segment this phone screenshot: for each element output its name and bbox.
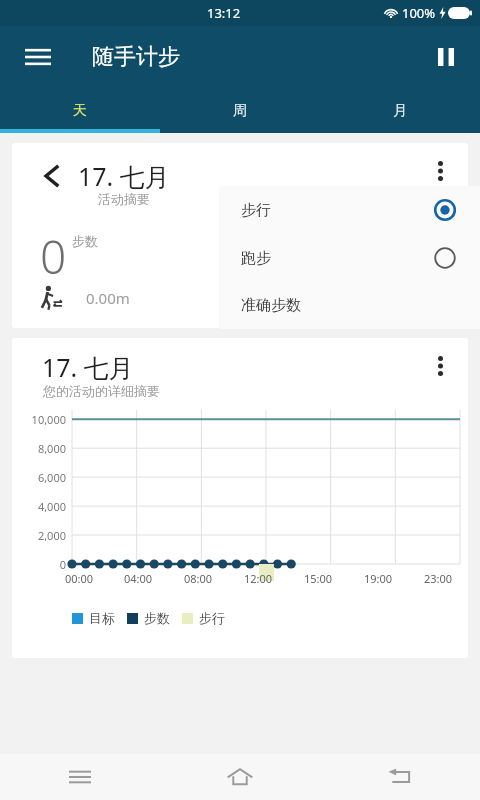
staticText: 13:12: [207, 4, 241, 22]
staticText: 00:00: [65, 571, 94, 586]
staticText: 100%: [402, 4, 436, 22]
staticText: 步数: [72, 233, 98, 249]
staticText: 2,000: [12, 528, 66, 543]
staticText: 10,000: [12, 412, 66, 427]
staticText: 随手计步: [92, 43, 180, 71]
staticText: 6,000: [12, 470, 66, 485]
button[interactable]: Previous day: [38, 163, 64, 189]
staticText: 23:00: [424, 571, 453, 586]
button[interactable]: More options: [420, 346, 460, 386]
staticText: 活动摘要: [98, 191, 150, 207]
button[interactable]: 天: [0, 88, 160, 133]
staticText: 步数: [144, 610, 170, 626]
staticText: 12:00: [244, 571, 273, 586]
staticText: 0: [40, 225, 67, 288]
button[interactable]: 17. 七月: [12, 338, 468, 658]
staticText: 目标: [89, 610, 115, 626]
staticText: 您的活动的详细摘要: [43, 383, 160, 399]
button[interactable]: Menu: [14, 33, 62, 81]
staticText: 准确步数: [241, 296, 301, 315]
button[interactable]: Previous day: [12, 143, 468, 328]
button[interactable]: 周: [160, 88, 320, 133]
staticText: 周: [233, 102, 247, 120]
button[interactable]: 准确步数: [219, 282, 480, 329]
staticText: 17. 七月: [78, 159, 170, 193]
button[interactable]: 步行: [219, 186, 480, 234]
button[interactable]: 跑步: [219, 234, 480, 282]
staticText: 步行: [241, 201, 271, 220]
button[interactable]: Recents: [0, 754, 160, 800]
staticText: 17. 七月: [42, 350, 134, 384]
button[interactable]: Back: [320, 754, 480, 800]
staticText: 跑步: [241, 249, 271, 268]
button[interactable]: Pause: [424, 35, 468, 79]
staticText: 月: [393, 102, 407, 120]
staticText: 19:00: [364, 571, 393, 586]
staticText: 04:00: [124, 571, 153, 586]
staticText: 4,000: [12, 499, 66, 514]
button[interactable]: 月: [320, 88, 480, 133]
staticText: 08:00: [184, 571, 213, 586]
staticText: 步行: [199, 610, 225, 626]
button[interactable]: Home: [160, 754, 320, 800]
staticText: 8,000: [12, 441, 66, 456]
staticText: 天: [73, 102, 87, 120]
button[interactable]: More options: [420, 151, 460, 191]
staticText: 15:00: [304, 571, 333, 586]
staticText: 0: [12, 557, 66, 572]
staticText: 0.00m: [86, 288, 130, 308]
